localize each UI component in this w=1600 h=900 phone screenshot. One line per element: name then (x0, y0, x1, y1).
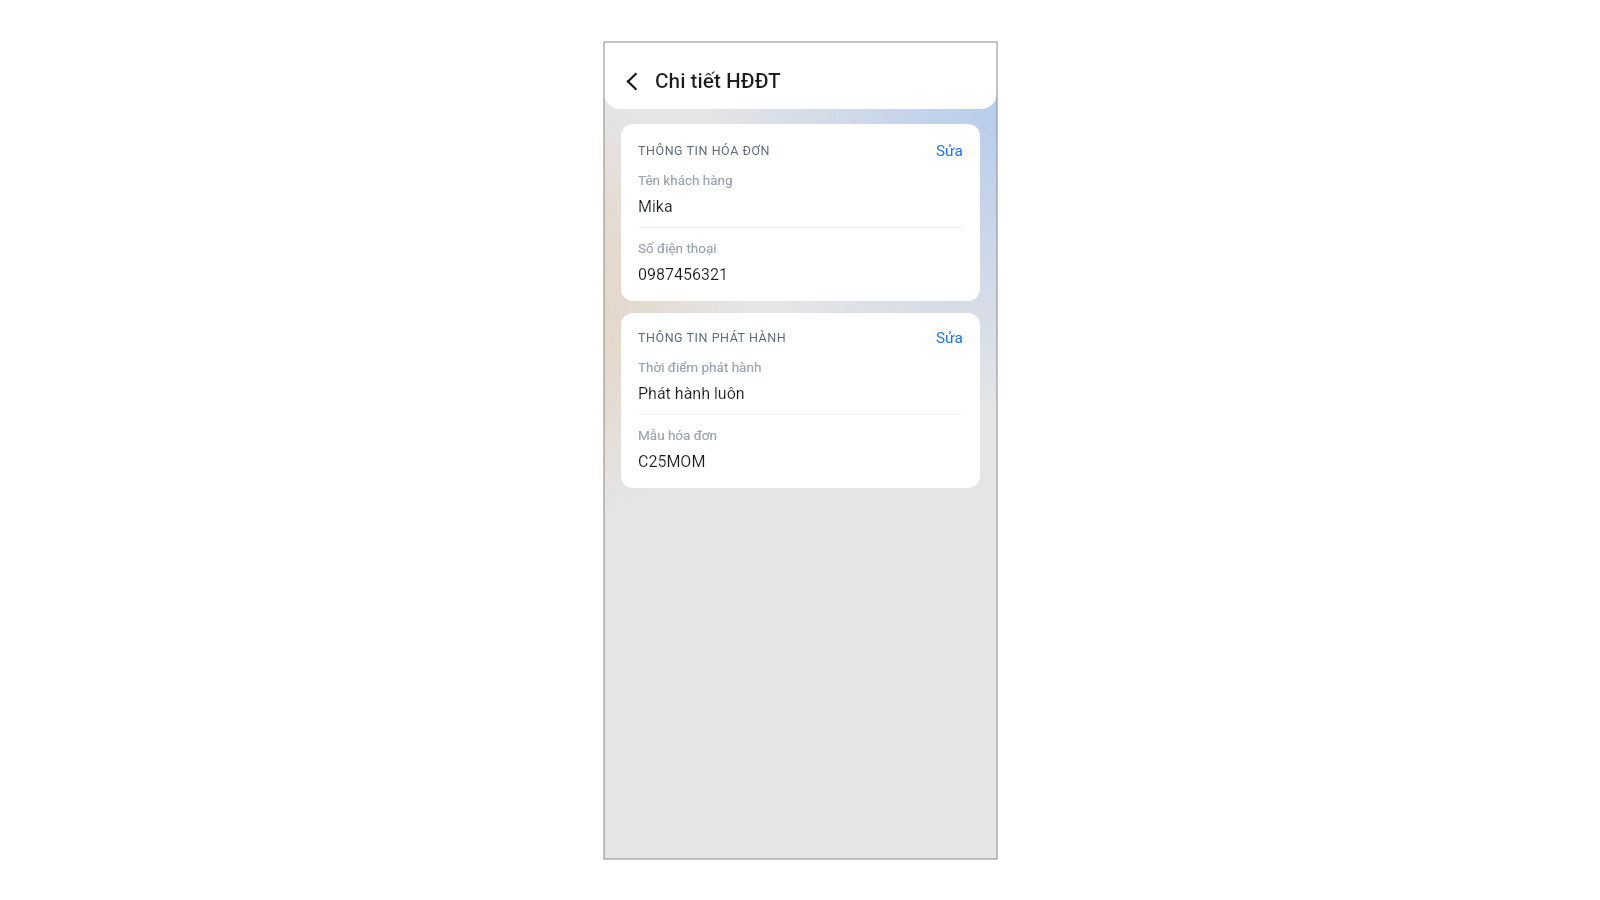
staticText: Tên khách hàng (638, 172, 733, 188)
button[interactable]: Back (614, 64, 648, 98)
button[interactable]: Sửa (926, 142, 973, 160)
staticText: C25MOM (638, 452, 706, 471)
button[interactable]: Sửa (926, 329, 973, 347)
staticText: Mẫu hóa đơn (638, 427, 717, 443)
staticText: THÔNG TIN PHÁT HÀNH (638, 330, 787, 345)
staticText: 0987456321 (638, 265, 728, 284)
staticText: Mika (638, 197, 673, 216)
staticText: THÔNG TIN HÓA ĐƠN (638, 143, 771, 158)
staticText: Sửa (936, 142, 963, 160)
staticText: Sửa (936, 329, 963, 347)
staticText: Phát hành luôn (638, 384, 745, 403)
staticText: Số điện thoại (638, 240, 717, 256)
staticText: Chi tiết HĐĐT (655, 69, 781, 93)
staticText: Thời điểm phát hành (638, 359, 762, 375)
